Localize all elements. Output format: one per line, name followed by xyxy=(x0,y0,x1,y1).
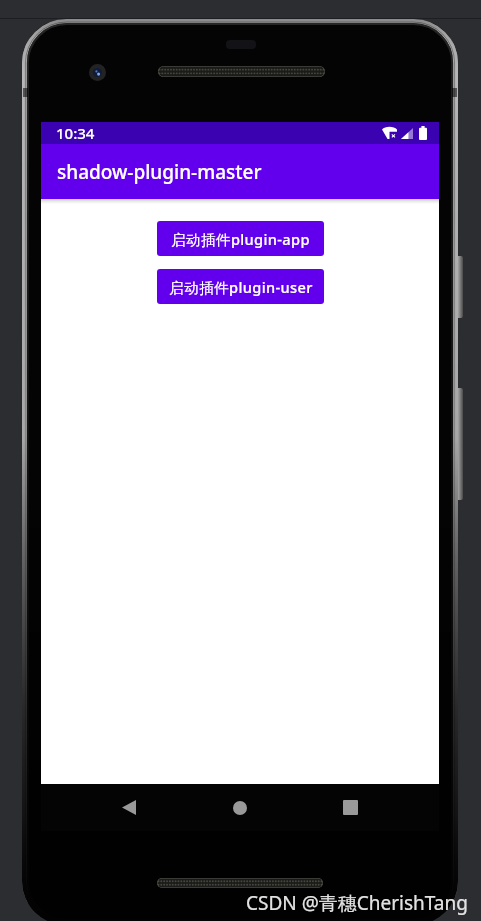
staticText: CSDN @青穗CherishTang xyxy=(246,890,468,916)
button[interactable]: Back xyxy=(74,784,184,831)
staticText: shadow-plugin-master xyxy=(57,159,262,185)
button[interactable]: 启动插件plugin-user xyxy=(157,269,324,304)
staticText: 10:34 xyxy=(56,123,95,143)
button[interactable]: Home xyxy=(184,784,295,831)
button[interactable]: 启动插件plugin-app xyxy=(157,221,324,256)
staticText: 启动插件plugin-app xyxy=(171,229,310,249)
button[interactable]: Recent apps xyxy=(295,784,406,831)
staticText: 启动插件plugin-user xyxy=(169,277,313,297)
